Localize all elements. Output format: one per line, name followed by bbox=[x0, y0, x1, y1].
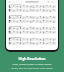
button[interactable]: Sheet music preview on phone bbox=[5, 0, 59, 52]
staticText: zoom, pan and read every note clearly bbox=[3, 67, 61, 70]
staticText: Crisp, legible scores on every screen bbox=[3, 63, 61, 66]
staticText: High Resolution bbox=[4, 56, 60, 61]
